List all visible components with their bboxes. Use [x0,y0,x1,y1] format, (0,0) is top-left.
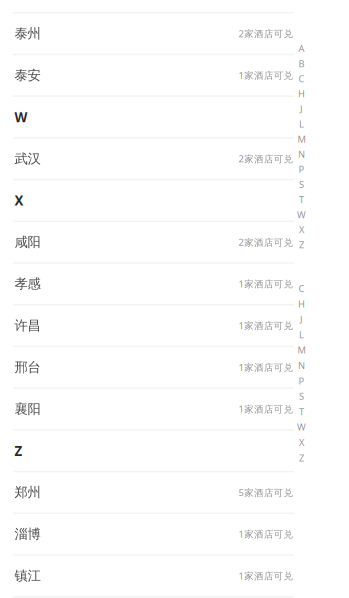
staticText: 1家酒店可兑 [238,528,292,540]
staticText: T [299,193,304,206]
staticText: Z [299,239,304,251]
staticText: P [298,375,304,387]
staticText: C [298,282,304,295]
staticText: T [299,405,304,418]
staticText: X [14,192,23,209]
staticText: 襄阳 [14,401,40,417]
staticText: Z [299,452,304,464]
staticText: 1家酒店可兑 [238,69,292,81]
button[interactable]: H [293,296,309,311]
staticText: 泰安 [14,67,40,83]
button[interactable]: N [293,147,309,162]
staticText: Z [14,442,22,460]
button[interactable]: Z [293,450,309,465]
staticText: 咸阳 [14,234,40,250]
staticText: 武汉 [14,150,40,167]
button[interactable]: 咸阳 [0,222,349,264]
staticText: W [14,108,27,126]
staticText: 淄博 [14,526,40,542]
button[interactable]: P [293,162,309,177]
staticText: 郑州 [14,484,40,501]
staticText: 2家酒店可兑 [238,236,292,248]
button[interactable]: T [293,192,309,207]
button[interactable]: J [293,311,309,327]
staticText: H [298,298,305,310]
staticText: 5家酒店可兑 [238,486,292,499]
button[interactable]: W [293,207,309,222]
staticText: B [298,57,304,70]
staticText: X [299,436,304,449]
button[interactable]: 孝感 [0,264,349,305]
button[interactable]: L [293,327,309,342]
button[interactable]: M [293,131,309,147]
staticText: N [298,148,305,160]
staticText: J [300,103,303,115]
button[interactable]: P [293,373,309,388]
button[interactable]: M [293,342,309,358]
staticText: S [299,178,304,191]
staticText: 泰州 [14,25,40,42]
button[interactable]: C [293,281,309,296]
staticText: H [298,88,305,100]
staticText: M [297,344,305,356]
button[interactable]: X [293,435,309,450]
button[interactable]: H [293,86,309,101]
button[interactable]: 襄阳 [0,389,349,431]
staticText: C [298,72,304,85]
button[interactable]: 郑州 [0,472,349,514]
staticText: J [300,313,303,325]
staticText: L [299,118,304,130]
staticText: 许昌 [14,317,40,334]
staticText: P [298,163,304,175]
button[interactable]: 许昌 [0,305,349,347]
staticText: A [298,42,304,55]
staticText: 1家酒店可兑 [238,361,292,373]
staticText: M [297,133,305,145]
button[interactable]: N [293,358,309,373]
button[interactable]: 泰安 [0,55,349,97]
staticText: 2家酒店可兑 [238,27,292,40]
staticText: X [299,223,304,236]
button[interactable]: B [293,56,309,71]
staticText: 2家酒店可兑 [238,152,292,165]
button[interactable]: W [293,419,309,435]
button[interactable]: 镇江 [0,556,349,597]
button[interactable]: 武汉 [0,139,349,180]
button[interactable]: Z [293,237,309,252]
staticText: 邢台 [14,359,40,375]
button[interactable]: X [293,222,309,237]
staticText: N [298,359,305,372]
button[interactable]: L [293,116,309,131]
staticText: 镇江 [14,568,40,584]
button[interactable]: 淄博 [0,514,349,556]
staticText: 1家酒店可兑 [238,278,292,290]
staticText: 1家酒店可兑 [238,570,292,582]
button[interactable]: A [293,41,309,56]
button[interactable]: T [293,404,309,419]
staticText: 1家酒店可兑 [238,403,292,415]
staticText: W [297,421,306,433]
button[interactable]: S [293,177,309,192]
staticText: S [299,390,304,402]
button[interactable]: 邢台 [0,347,349,389]
staticText: L [299,328,304,341]
button[interactable]: J [293,101,309,116]
staticText: 1家酒店可兑 [238,319,292,332]
button[interactable]: S [293,388,309,404]
staticText: 孝感 [14,276,40,292]
staticText: W [297,208,306,221]
button[interactable]: 泰州 [0,13,349,55]
button[interactable]: C [293,71,309,86]
